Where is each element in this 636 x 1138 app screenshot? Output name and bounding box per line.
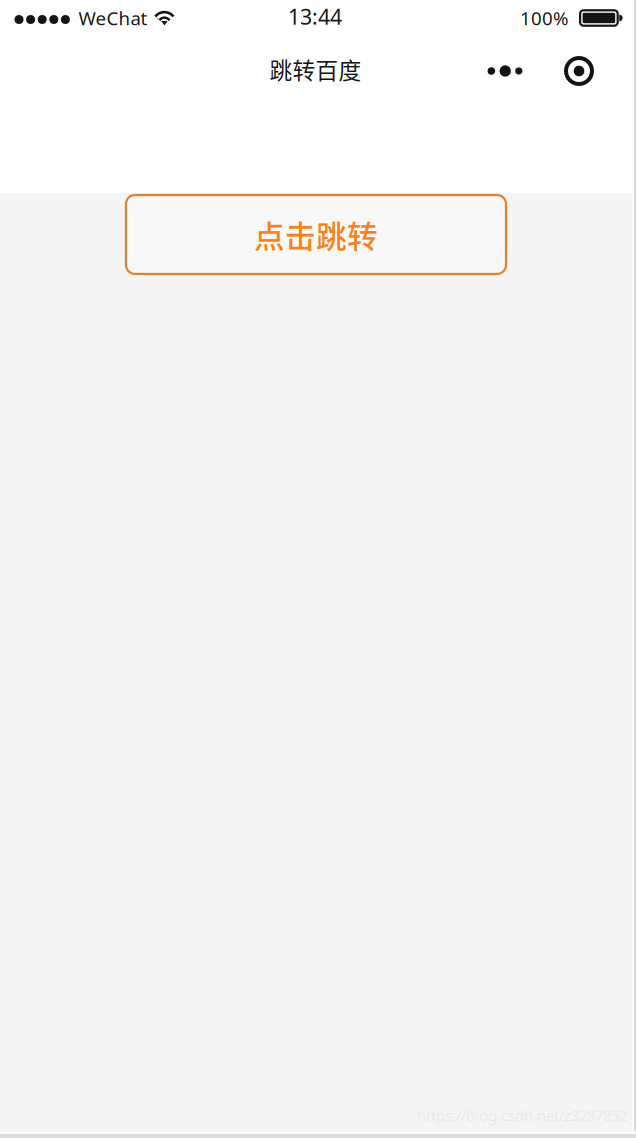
staticText: 100%	[520, 6, 569, 30]
button[interactable]: More options	[475, 36, 535, 106]
staticText: 13:44	[288, 2, 342, 31]
button[interactable]: 点击跳转	[126, 195, 506, 274]
staticText: WeChat	[78, 6, 147, 30]
button[interactable]: Close mini program	[551, 36, 607, 106]
staticText: 跳转百度	[269, 53, 361, 85]
staticText: 点击跳转	[254, 212, 378, 257]
staticText: https://blog.csdn.net/z3287852	[417, 1105, 627, 1125]
